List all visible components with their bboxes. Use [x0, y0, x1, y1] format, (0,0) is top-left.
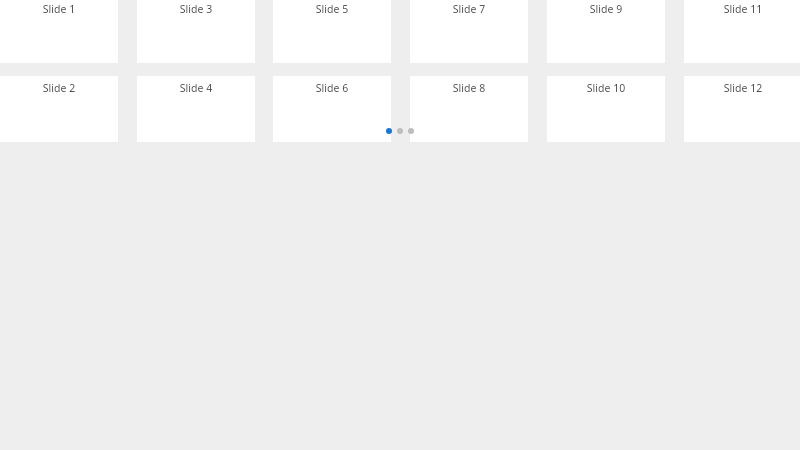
button[interactable]: Slide 9 — [547, 0, 665, 63]
staticText: Slide 6 — [273, 81, 391, 95]
staticText: Slide 1 — [0, 2, 118, 16]
staticText: Slide 5 — [273, 2, 391, 16]
button[interactable]: Slide 4 — [137, 76, 255, 142]
button[interactable]: Slide 12 — [684, 76, 800, 142]
staticText: Slide 7 — [410, 2, 528, 16]
button[interactable]: Slide 1 — [0, 0, 118, 63]
button[interactable]: Slide 3 — [137, 0, 255, 63]
staticText: Slide 3 — [137, 2, 255, 16]
staticText: Slide 8 — [410, 81, 528, 95]
button[interactable]: Slide 11 — [684, 0, 800, 63]
button[interactable]: Slide 7 — [410, 0, 528, 63]
staticText: Slide 11 — [684, 2, 800, 16]
button[interactable]: Slide 5 — [273, 0, 391, 63]
button[interactable]: Slide 8 — [410, 76, 528, 142]
staticText: Slide 4 — [137, 81, 255, 95]
staticText: Slide 12 — [684, 81, 800, 95]
button[interactable]: Slide 10 — [547, 76, 665, 142]
staticText: Slide 9 — [547, 2, 665, 16]
staticText: Slide 2 — [0, 81, 118, 95]
staticText: Slide 10 — [547, 81, 665, 95]
button[interactable]: Slide 2 — [0, 76, 118, 142]
button[interactable]: Page indicator — [386, 128, 414, 134]
button[interactable]: Slide 6 — [273, 76, 391, 142]
